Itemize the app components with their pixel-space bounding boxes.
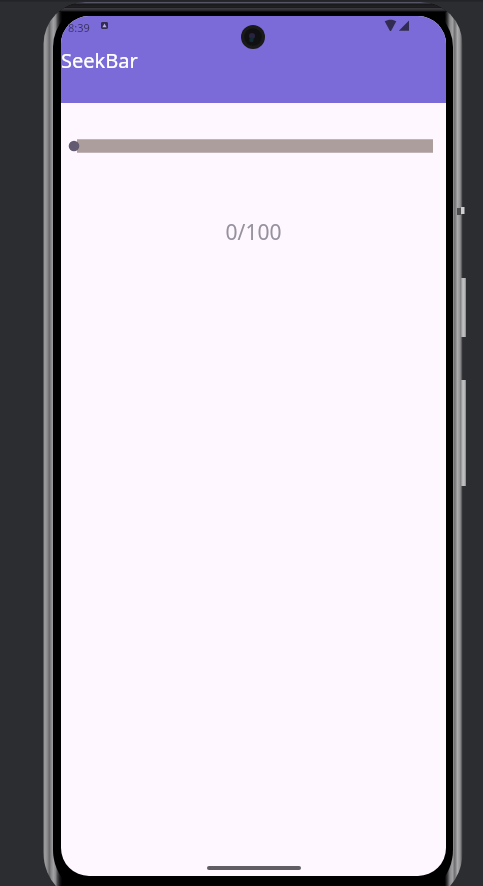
staticText: SeekBar <box>61 47 138 74</box>
staticText: 0/100 <box>61 218 446 247</box>
staticText: 8:39 <box>68 20 90 35</box>
button[interactable]: Seek bar, 0 of 100 <box>61 130 446 162</box>
